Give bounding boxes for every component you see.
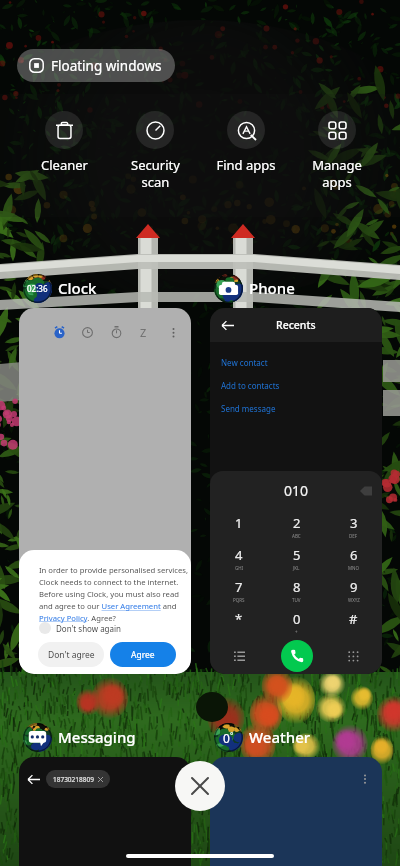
- button[interactable]: 9: [325, 574, 382, 606]
- button[interactable]: 7: [210, 574, 268, 606]
- button[interactable]: 1: [210, 510, 268, 542]
- staticText: WXYZ: [348, 597, 360, 603]
- staticText: 0: [223, 730, 230, 746]
- button[interactable]: Call: [281, 640, 313, 672]
- staticText: #: [349, 610, 358, 628]
- other: Backspace: [360, 485, 372, 497]
- staticText: TUV: [292, 597, 301, 603]
- button[interactable]: 5: [268, 542, 325, 574]
- button[interactable]: 0: [268, 606, 325, 638]
- other: Keypad: [348, 651, 359, 662]
- button[interactable]: Find apps: [201, 111, 291, 174]
- staticText: °: [230, 730, 234, 741]
- staticText: Don't show again: [56, 623, 122, 634]
- button[interactable]: Call log: [210, 638, 268, 674]
- button[interactable]: Keypad: [325, 638, 382, 674]
- button[interactable]: Phone: [214, 273, 295, 303]
- button[interactable]: More options: [210, 757, 382, 866]
- staticText: 5: [293, 546, 301, 564]
- staticText: 1: [235, 514, 243, 532]
- staticText: GHI: [235, 565, 244, 571]
- staticText: Security scan: [131, 156, 180, 191]
- staticText: Add to contacts: [221, 380, 280, 391]
- other: More options: [360, 774, 370, 784]
- button[interactable]: Add to contacts: [221, 374, 382, 397]
- staticText: 6: [350, 546, 358, 564]
- staticText: Messaging: [58, 727, 136, 747]
- staticText: *: [235, 610, 243, 628]
- staticText: JKL: [293, 565, 300, 571]
- staticText: In order to provide personalised service…: [39, 565, 191, 623]
- button[interactable]: New contact: [221, 351, 382, 374]
- button[interactable]: 6: [325, 542, 382, 574]
- staticText: PQRS: [233, 597, 245, 603]
- button[interactable]: 8: [268, 574, 325, 606]
- other: Back: [221, 319, 234, 332]
- staticText: Agree: [131, 649, 155, 661]
- button[interactable]: 4: [210, 542, 268, 574]
- button[interactable]: Don't show again: [37, 620, 124, 636]
- staticText: Don't agree: [48, 649, 95, 661]
- staticText: Cleaner: [41, 156, 88, 174]
- button[interactable]: Close all: [175, 761, 225, 811]
- staticText: Phone: [249, 278, 295, 298]
- staticText: 7: [235, 578, 243, 596]
- staticText: ABC: [292, 533, 301, 539]
- staticText: 4: [235, 546, 243, 564]
- button[interactable]: Back: [210, 308, 382, 674]
- staticText: DEF: [349, 533, 358, 539]
- staticText: Send message: [221, 403, 276, 414]
- button[interactable]: *: [210, 606, 268, 638]
- staticText: 9: [350, 578, 358, 596]
- button[interactable]: Messaging: [23, 722, 136, 752]
- button[interactable]: Cleaner: [19, 111, 109, 174]
- staticText: 02:36: [27, 283, 48, 294]
- staticText: Floating windows: [51, 57, 162, 75]
- button[interactable]: 18730218809: [46, 770, 110, 788]
- button[interactable]: 02:36: [23, 273, 97, 303]
- staticText: New contact: [221, 357, 268, 368]
- button[interactable]: Security scan: [110, 111, 200, 191]
- staticText: Weather: [249, 727, 311, 747]
- button[interactable]: #: [325, 606, 382, 638]
- button[interactable]: Back: [19, 757, 191, 866]
- staticText: 010: [284, 481, 309, 500]
- staticText: Find apps: [216, 156, 276, 174]
- staticText: 2: [293, 514, 301, 532]
- staticText: Manage apps: [312, 156, 362, 191]
- other: Call log: [234, 651, 245, 662]
- staticText: Z: [140, 325, 147, 340]
- staticText: Recents: [276, 318, 316, 332]
- staticText: 8: [293, 578, 301, 596]
- staticText: MNO: [348, 565, 360, 571]
- staticText: 0: [293, 610, 301, 628]
- button[interactable]: Send message: [221, 397, 382, 420]
- staticText: Clock: [58, 278, 97, 298]
- button[interactable]: Agree: [110, 642, 176, 667]
- button[interactable]: Z: [19, 308, 191, 674]
- staticText: 3: [350, 514, 358, 532]
- button[interactable]: Don't agree: [38, 642, 104, 667]
- staticText: +: [295, 629, 298, 635]
- button[interactable]: 2: [268, 510, 325, 542]
- other: Back: [27, 773, 40, 786]
- button[interactable]: Floating windows: [17, 49, 175, 82]
- button[interactable]: 0: [214, 722, 311, 752]
- button[interactable]: 3: [325, 510, 382, 542]
- staticText: 18730218809: [53, 775, 94, 784]
- button[interactable]: Manage apps: [292, 111, 382, 191]
